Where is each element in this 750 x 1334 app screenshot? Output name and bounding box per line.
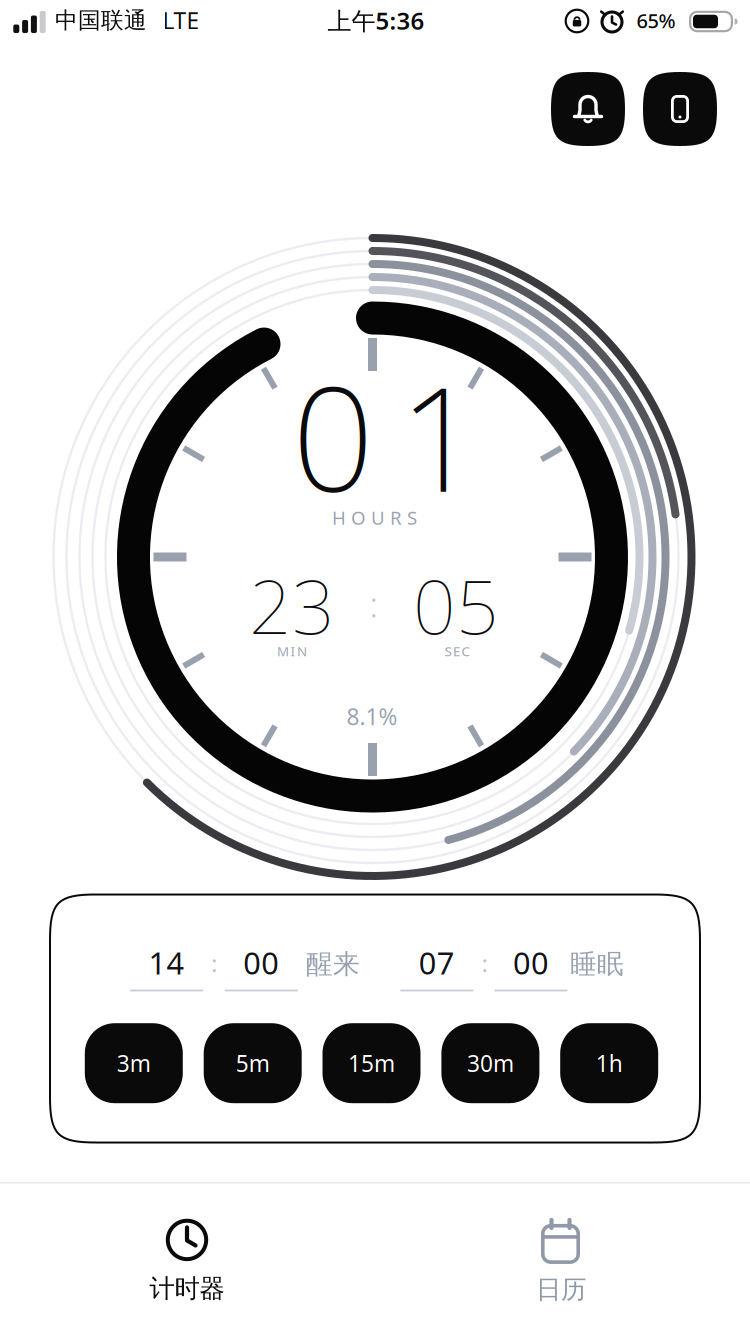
staticText: 14	[148, 942, 184, 983]
staticText: :	[211, 947, 217, 979]
staticText: 1h	[596, 1048, 623, 1078]
staticText: 计时器	[149, 1273, 224, 1304]
staticText: 07	[419, 942, 455, 983]
staticText: 5m	[236, 1048, 270, 1078]
staticText: 15m	[348, 1048, 395, 1078]
staticText: 3m	[117, 1048, 151, 1078]
button[interactable]: 计时器	[87, 1206, 287, 1316]
staticText: 8.1%	[346, 701, 397, 731]
staticText: 上午5:36	[327, 5, 424, 36]
staticText: 00	[243, 942, 279, 983]
button[interactable]	[643, 72, 717, 146]
button[interactable]: 07	[396, 935, 478, 991]
button[interactable]: 3m	[85, 1023, 183, 1103]
staticText: 醒来	[306, 948, 360, 980]
button[interactable]: 00	[220, 935, 302, 991]
staticText: 00	[513, 942, 549, 983]
button[interactable]	[551, 72, 625, 146]
staticText: 日历	[536, 1274, 586, 1305]
staticText: 睡眠	[570, 948, 624, 980]
staticText: :	[369, 581, 377, 627]
staticText: HOURS	[332, 505, 417, 530]
button[interactable]: 1h	[560, 1023, 658, 1103]
button[interactable]: 日历	[461, 1206, 661, 1316]
staticText: 65%	[636, 7, 675, 34]
staticText: SEC	[444, 642, 469, 660]
staticText: :	[481, 947, 487, 979]
staticText: MIN	[277, 642, 307, 660]
staticText: 05	[413, 555, 499, 655]
staticText: 23	[249, 555, 335, 655]
staticText: 01	[292, 340, 481, 532]
staticText: LTE	[162, 5, 199, 35]
staticText: 中国联通	[55, 7, 147, 34]
button[interactable]: 5m	[204, 1023, 302, 1103]
staticText: 30m	[467, 1048, 514, 1078]
button[interactable]: 00	[490, 935, 572, 991]
button[interactable]: 14	[125, 935, 207, 991]
button[interactable]: 30m	[441, 1023, 539, 1103]
button[interactable]: 15m	[322, 1023, 420, 1103]
